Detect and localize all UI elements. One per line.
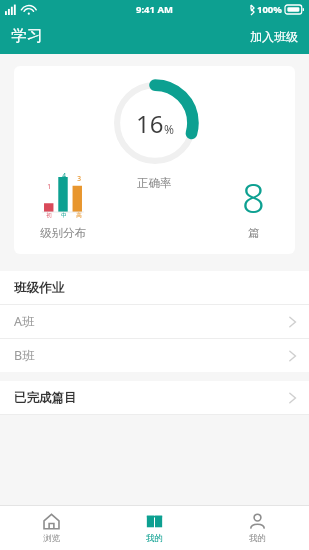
staticText: A班 [14,313,35,330]
staticText: 我的 [146,533,163,544]
button[interactable]: 浏览 [0,506,103,550]
staticText: 3 [77,174,81,183]
staticText: % [164,121,174,137]
staticText: 篇 [248,226,260,240]
staticText: 100% [257,3,282,16]
button[interactable]: 我的书架 [103,506,206,550]
staticText: 9:41 AM [136,3,173,16]
staticText: 16 [136,107,164,140]
button[interactable]: 16 [14,66,295,254]
button[interactable]: A班 [0,305,309,338]
staticText: 1 [47,182,51,191]
staticText: 高 [76,212,82,219]
staticText: 初 [46,212,52,219]
staticText: B班 [14,347,35,364]
staticText: 中 [61,212,67,219]
button[interactable]: 加入班级 [239,23,309,50]
staticText: 我的 [249,533,266,544]
button[interactable]: B班 [0,339,309,372]
staticText: 级别分布 [40,226,86,240]
staticText: 正确率 [137,176,172,190]
staticText: 4 [62,171,66,180]
staticText: 学习 [11,26,43,46]
staticText: 加入班级 [250,29,298,44]
button[interactable]: 我的 [206,506,309,550]
staticText: 已完成篇目 [14,390,77,406]
staticText: 浏览 [43,533,60,544]
staticText: 班级作业 [14,280,64,296]
button[interactable]: 已完成篇目 [0,381,309,414]
staticText: 8 [242,170,265,224]
